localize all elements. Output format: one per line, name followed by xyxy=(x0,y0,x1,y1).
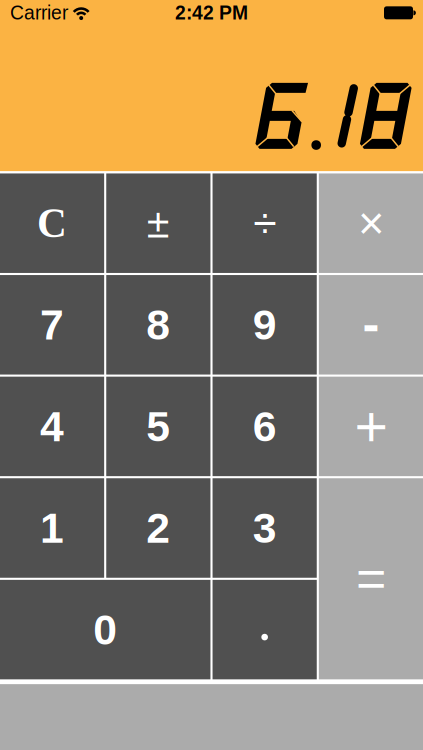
button[interactable]: 0 xyxy=(0,580,210,679)
button[interactable]: 9 xyxy=(212,275,317,375)
button[interactable]: 8 xyxy=(106,275,210,375)
button[interactable]: 2 xyxy=(106,478,210,578)
button[interactable]: 5 xyxy=(106,377,210,476)
button[interactable]: 6 xyxy=(212,377,317,476)
staticText: + xyxy=(354,394,387,458)
staticText: Carrier xyxy=(10,2,68,24)
button[interactable]: 3 xyxy=(212,478,317,578)
button[interactable]: 1 xyxy=(0,478,104,578)
staticText: ± xyxy=(147,200,170,246)
button[interactable]: C xyxy=(0,173,104,273)
staticText: 7 xyxy=(40,301,64,349)
button[interactable]: + xyxy=(319,377,423,476)
staticText: 8 xyxy=(146,301,170,349)
staticText: 4 xyxy=(40,403,64,450)
button[interactable]: 7 xyxy=(0,275,104,375)
button[interactable]: - xyxy=(319,275,423,375)
button[interactable]: × xyxy=(319,173,423,273)
staticText: 2 xyxy=(146,504,170,552)
staticText: ÷ xyxy=(253,199,276,247)
staticText: 3 xyxy=(253,504,277,552)
button[interactable]: = xyxy=(319,478,423,679)
staticText: = xyxy=(356,550,386,608)
staticText: 5 xyxy=(146,403,170,450)
staticText: 9 xyxy=(253,301,277,349)
staticText: 2:42 PM xyxy=(175,2,248,24)
staticText: - xyxy=(362,295,379,352)
staticText: 6 xyxy=(253,403,277,450)
staticText: × xyxy=(358,198,384,248)
staticText: 0 xyxy=(93,606,117,653)
button[interactable]: ÷ xyxy=(212,173,317,273)
button[interactable]: ± xyxy=(106,173,210,273)
button[interactable]: 4 xyxy=(0,377,104,476)
button[interactable]: Decimal point xyxy=(212,580,317,679)
staticText: 1 xyxy=(40,504,64,552)
staticText: C xyxy=(37,200,67,246)
